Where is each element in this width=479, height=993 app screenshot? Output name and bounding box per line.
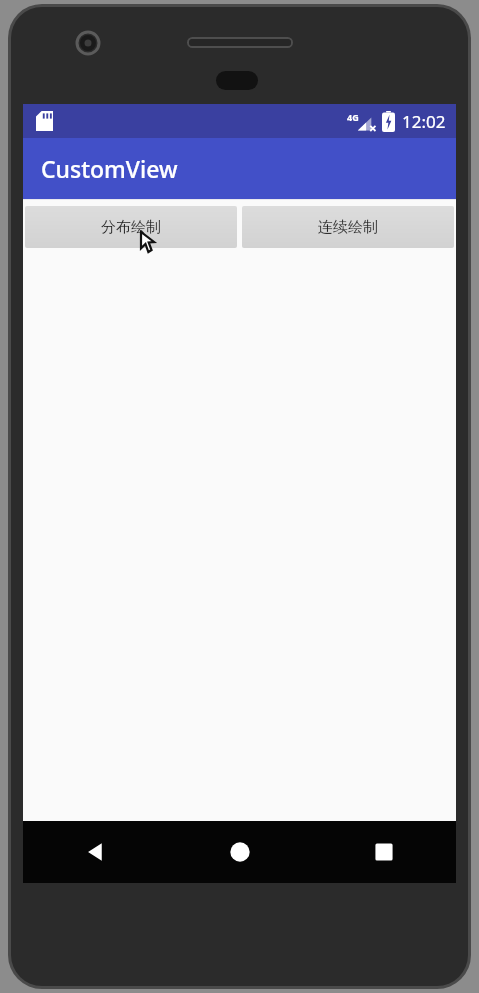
button[interactable]: 分布绘制 [25,206,237,248]
button[interactable]: Recent apps [312,821,456,883]
staticText: 4G [347,111,359,123]
button[interactable]: Back [23,821,168,883]
staticText: 连续绘制 [318,218,378,237]
button[interactable]: Home [168,821,312,883]
staticText: 12:02 [402,110,446,133]
staticText: CustomView [41,153,178,184]
staticText: 分布绘制 [101,218,161,237]
button[interactable]: 连续绘制 [242,206,454,248]
